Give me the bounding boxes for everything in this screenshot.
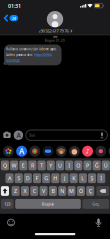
staticText: İ [100, 175, 102, 182]
staticText: 24 [12, 15, 16, 21]
staticText: Geç [92, 201, 99, 206]
button[interactable]: G [42, 173, 50, 183]
staticText: F [35, 175, 38, 182]
button[interactable]: M [68, 186, 76, 196]
staticText: Y [49, 162, 52, 169]
staticText: Lütfen paranızı alın: [6, 53, 34, 57]
button[interactable] [42, 146, 53, 157]
button[interactable] [69, 146, 80, 157]
button[interactable]: Geç [82, 199, 109, 209]
button[interactable]: İleti [26, 130, 108, 140]
staticText: Bugün 01:29 [45, 39, 65, 42]
button[interactable]: A [5, 173, 14, 183]
staticText: SMS [53, 35, 57, 38]
staticText: S [17, 175, 20, 182]
staticText: H [53, 175, 57, 182]
staticText: Ü [104, 162, 108, 169]
button[interactable]: Z [12, 186, 20, 196]
staticText: C [33, 187, 36, 195]
button[interactable]: V [40, 186, 48, 196]
button[interactable]: B [49, 186, 57, 196]
staticText: A [16, 131, 20, 140]
button[interactable]: Ğ [93, 160, 101, 170]
staticText: N [60, 187, 64, 195]
button[interactable]: Ü [102, 160, 110, 170]
staticText: 01:31 [8, 2, 21, 10]
button[interactable]: H [51, 173, 59, 183]
button[interactable] [6, 217, 16, 227]
staticText: https://b9bk. [34, 53, 52, 57]
button[interactable]: W [10, 160, 18, 170]
staticText: D [26, 175, 30, 182]
staticText: Ğ [95, 162, 99, 169]
staticText: Q [3, 162, 7, 169]
button[interactable]: A [14, 130, 23, 140]
button[interactable] [96, 186, 109, 196]
staticText: R [31, 162, 34, 169]
button[interactable]: U [56, 160, 64, 170]
button[interactable] [1, 186, 9, 196]
staticText: U [58, 162, 62, 169]
staticText: W [12, 162, 17, 169]
staticText: Ş [90, 175, 93, 182]
button[interactable]: Ç [86, 186, 94, 196]
button[interactable]: S [15, 173, 23, 183]
staticText: Ö [79, 187, 83, 195]
staticText: İleti [29, 132, 35, 138]
staticText: M [69, 187, 74, 195]
button[interactable]: ♪ [82, 146, 93, 157]
button[interactable]: L [79, 173, 87, 183]
button[interactable]: X [21, 186, 29, 196]
button[interactable]: R [28, 160, 36, 170]
button[interactable]: Ö [77, 186, 85, 196]
button[interactable] [2, 131, 12, 139]
button[interactable]: D [24, 173, 32, 183]
button[interactable]: +90 552 617 79 76 [36, 11, 74, 33]
staticText: O [76, 162, 80, 169]
button[interactable]: Y [47, 160, 55, 170]
button[interactable]: O [74, 160, 82, 170]
staticText: I [68, 162, 70, 169]
staticText: L [81, 175, 84, 182]
staticText: Boşluk [42, 201, 54, 206]
button[interactable]: A [16, 146, 27, 157]
button[interactable]: P [83, 160, 91, 170]
staticText: A [8, 175, 11, 182]
button[interactable] [108, 146, 110, 157]
staticText: Kullanıcı unvanınız için ödeme yaptı. [6, 47, 57, 51]
button[interactable]: N [58, 186, 66, 196]
staticText: B [51, 187, 54, 195]
button[interactable]: Boşluk [15, 199, 81, 209]
button[interactable] [95, 146, 106, 157]
button[interactable]: 24 [3, 14, 18, 22]
staticText: G [44, 175, 48, 182]
button[interactable] [29, 146, 40, 157]
button[interactable]: J [60, 173, 69, 183]
button[interactable]: F [33, 173, 41, 183]
staticText: E [22, 162, 25, 169]
button[interactable]: Q [1, 160, 9, 170]
staticText: +90 552 617 79 76 [38, 28, 68, 34]
staticText: K [72, 175, 75, 182]
button[interactable]: https://b9bk. [34, 53, 52, 57]
button[interactable]: 123 [1, 199, 14, 209]
button[interactable]: T [38, 160, 46, 170]
button[interactable]: C [30, 186, 38, 196]
button[interactable] [56, 146, 67, 157]
staticText: biz/u8Qz2 [6, 59, 20, 62]
button[interactable]: biz/u8Qz2 [6, 59, 20, 62]
button[interactable]: K [70, 173, 78, 183]
staticText: X [23, 187, 26, 195]
button[interactable] [93, 216, 103, 228]
staticText: V [42, 187, 45, 195]
staticText: J [64, 175, 65, 182]
button[interactable]: E [19, 160, 27, 170]
button[interactable]: I [65, 160, 73, 170]
staticText: P [86, 162, 89, 169]
button[interactable]: Ş [88, 173, 96, 183]
staticText: Z [14, 187, 17, 195]
button[interactable]: İ [97, 173, 105, 183]
staticText: Ç [89, 187, 92, 195]
staticText: T [40, 162, 43, 169]
button[interactable] [3, 146, 14, 157]
